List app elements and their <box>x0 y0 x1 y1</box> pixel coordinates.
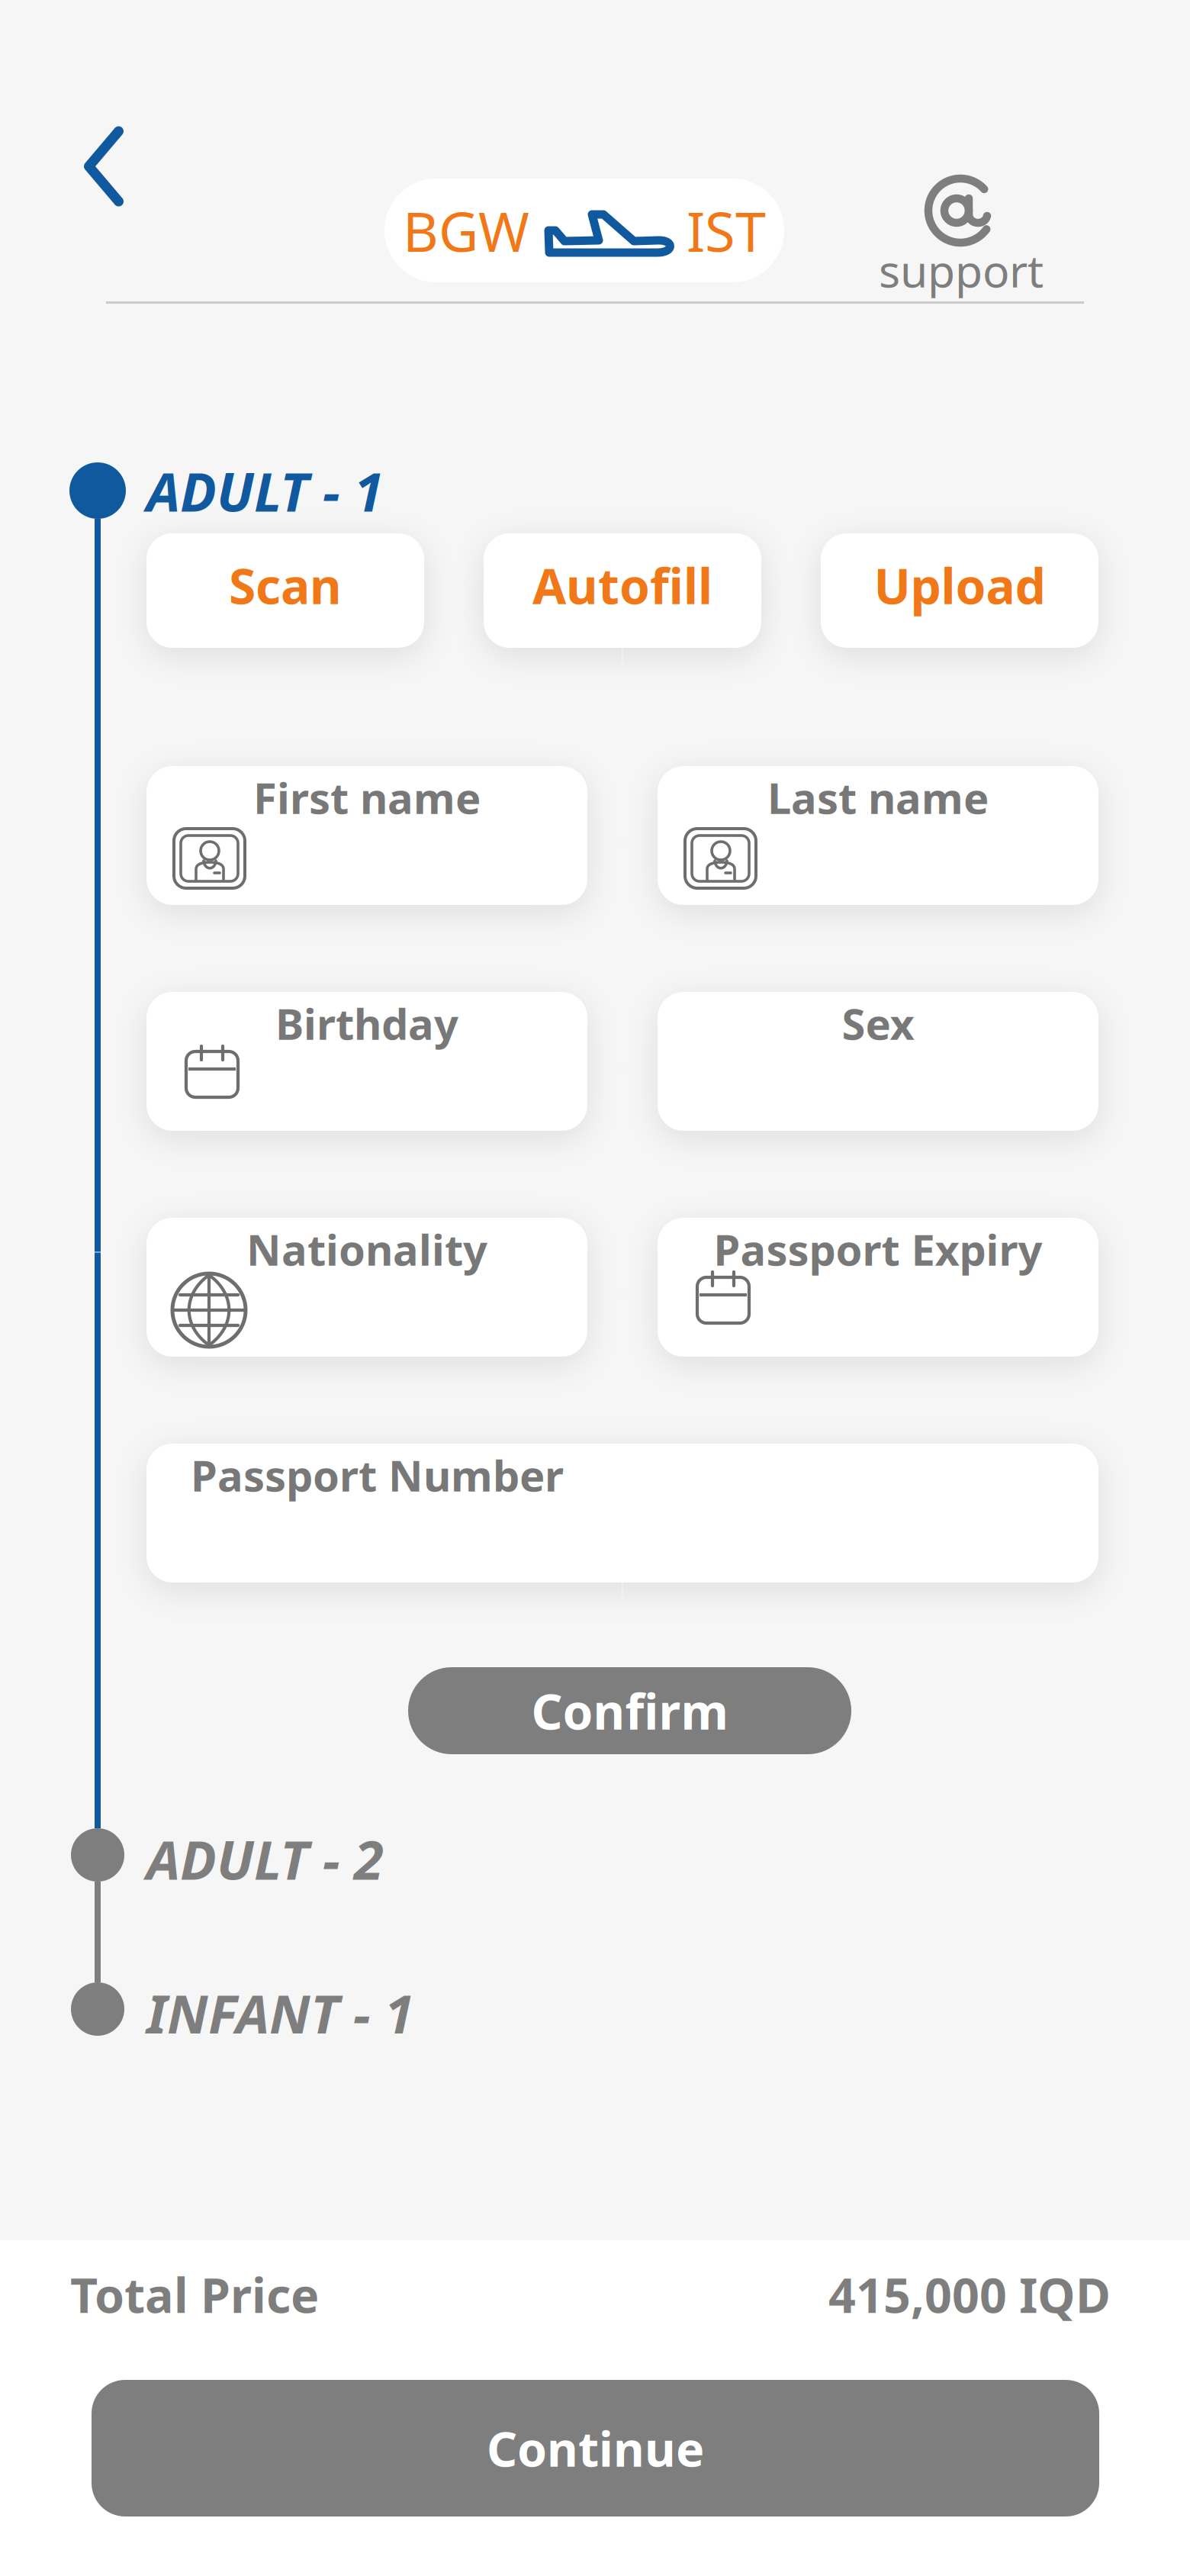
staticText: INFANT - 1 <box>146 1977 414 2049</box>
staticText: 415,000 IQD <box>828 2263 1111 2326</box>
button[interactable]: Passport Expiry <box>658 1218 1098 1357</box>
staticText: Confirm <box>531 1678 728 1743</box>
button[interactable]: Continue <box>92 2380 1099 2516</box>
staticText: Passport Number <box>191 1447 564 1503</box>
button[interactable]: Passport Number <box>146 1444 1098 1583</box>
staticText: IST <box>687 194 766 267</box>
button[interactable]: support <box>873 173 1049 291</box>
staticText: Passport Expiry <box>714 1221 1042 1277</box>
staticText: ADULT - 2 <box>146 1823 384 1895</box>
staticText: Sex <box>842 995 914 1052</box>
staticText: Total Price <box>70 2263 319 2326</box>
staticText: Autofill <box>532 553 712 618</box>
staticText: Last name <box>767 769 989 826</box>
staticText: support <box>879 240 1044 300</box>
button[interactable]: Last name <box>658 766 1098 905</box>
staticText: ADULT - 1 <box>146 455 384 526</box>
staticText: Birthday <box>275 995 458 1052</box>
button[interactable]: Scan <box>146 533 424 648</box>
button[interactable]: Nationality <box>146 1218 587 1357</box>
staticText: Upload <box>874 553 1045 618</box>
staticText: Nationality <box>246 1221 487 1277</box>
staticText: Scan <box>229 553 342 618</box>
staticText: BGW <box>403 194 529 267</box>
staticText: First name <box>253 769 481 826</box>
button[interactable]: Back <box>58 113 150 220</box>
button[interactable]: Birthday <box>146 992 587 1131</box>
button[interactable]: Upload <box>821 533 1098 648</box>
button[interactable]: First name <box>146 766 587 905</box>
button[interactable]: Sex <box>658 992 1098 1131</box>
button[interactable]: Confirm <box>408 1667 851 1754</box>
staticText: Continue <box>487 2416 704 2480</box>
button[interactable]: Autofill <box>484 533 761 648</box>
